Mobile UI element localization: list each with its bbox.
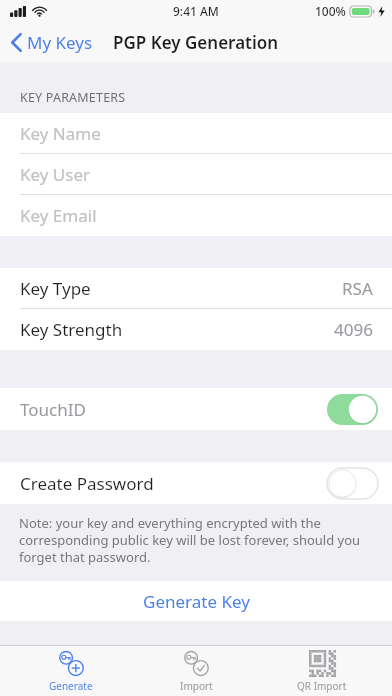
button[interactable]: Key Email <box>0 195 392 236</box>
staticText: TouchID <box>20 398 86 421</box>
staticText: KEY PARAMETERS <box>20 89 126 106</box>
staticText: Key Email <box>20 204 97 227</box>
staticText: Note: your key and everything encrypted … <box>19 514 370 566</box>
staticText: Generate Key <box>143 590 250 613</box>
staticText: 4096 <box>334 318 373 341</box>
staticText: Key Name <box>20 122 101 145</box>
staticText: QR Import <box>297 679 347 693</box>
staticText: Create Password <box>20 472 154 495</box>
button[interactable]: Key Strength <box>0 309 392 350</box>
staticText: Key Type <box>20 277 91 300</box>
staticText: PGP Key Generation <box>113 31 279 54</box>
button[interactable]: Key User <box>0 154 392 195</box>
staticText: 100% <box>315 3 346 19</box>
staticText: Generate <box>49 679 93 693</box>
button[interactable]: Generate <box>16 646 126 696</box>
button[interactable]: Import <box>141 646 251 696</box>
button[interactable]: Key Type <box>0 268 392 309</box>
button[interactable]: QR Import <box>267 646 377 696</box>
button[interactable]: Key Name <box>0 113 392 154</box>
button[interactable]: Generate Key <box>0 581 392 621</box>
staticText: My Keys <box>27 31 93 54</box>
staticText: Key Strength <box>20 318 123 341</box>
staticText: Import <box>180 679 213 693</box>
staticText: 9:41 AM <box>173 3 219 19</box>
staticText: Key User <box>20 163 91 186</box>
button[interactable]: Create Password <box>0 462 392 504</box>
staticText: RSA <box>342 277 373 300</box>
button[interactable]: My Keys <box>0 27 101 58</box>
button[interactable]: TouchID <box>0 388 392 430</box>
